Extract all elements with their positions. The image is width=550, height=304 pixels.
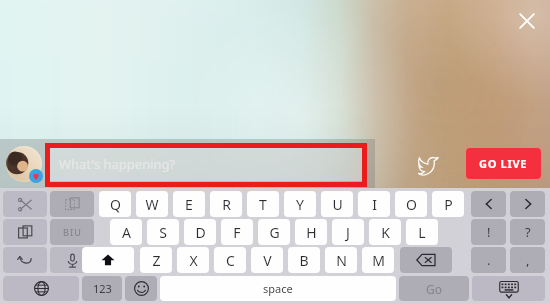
button[interactable]: . — [471, 247, 506, 273]
button[interactable]: Close — [510, 4, 544, 38]
button[interactable]: X — [177, 247, 209, 273]
button[interactable]: S — [147, 219, 179, 245]
button[interactable]: Y — [284, 191, 316, 217]
staticText: Z — [152, 251, 161, 270]
button[interactable]: D — [184, 219, 216, 245]
staticText: O — [406, 195, 417, 214]
staticText: B I U — [63, 226, 81, 238]
staticText: space — [263, 281, 293, 296]
button[interactable] — [471, 191, 506, 217]
staticText: S — [159, 223, 167, 242]
button[interactable]: E — [173, 191, 205, 217]
staticText: U — [332, 195, 343, 214]
staticText: N — [336, 251, 347, 270]
staticText: L — [418, 223, 426, 242]
button[interactable] — [50, 191, 94, 217]
staticText: I — [372, 195, 377, 214]
staticText: Y — [296, 195, 304, 214]
button[interactable]: ! — [471, 219, 506, 245]
staticText: E — [185, 195, 193, 214]
button[interactable]: Backspace — [400, 247, 452, 273]
button[interactable]: K — [369, 219, 401, 245]
staticText: B — [299, 251, 309, 270]
staticText: A — [122, 223, 131, 242]
staticText: GO LIVE — [479, 156, 528, 171]
button[interactable]: Z — [140, 247, 172, 273]
button[interactable]: F — [221, 219, 253, 245]
button[interactable]: H — [295, 219, 327, 245]
staticText: D — [195, 223, 206, 242]
button[interactable]: W — [136, 191, 168, 217]
button[interactable]: space — [160, 276, 396, 301]
button[interactable]: G — [258, 219, 290, 245]
button[interactable]: J — [332, 219, 364, 245]
staticText: ? — [525, 223, 531, 241]
button[interactable]: ? — [510, 219, 545, 245]
staticText: , — [526, 251, 530, 269]
button[interactable]: R — [210, 191, 242, 217]
staticText: T — [259, 195, 267, 214]
button[interactable] — [3, 219, 47, 245]
button[interactable]: O — [395, 191, 427, 217]
button[interactable]: T — [247, 191, 279, 217]
button[interactable]: N — [325, 247, 357, 273]
button[interactable]: M — [362, 247, 394, 273]
button[interactable]: Share on Twitter — [413, 149, 443, 179]
button[interactable] — [3, 191, 47, 217]
staticText: P — [444, 195, 453, 214]
button[interactable]: 123 — [82, 276, 122, 301]
staticText: . — [487, 251, 491, 269]
staticText: M — [372, 251, 385, 270]
button[interactable]: U — [321, 191, 353, 217]
button[interactable] — [510, 191, 545, 217]
button[interactable]: GO LIVE — [466, 148, 541, 179]
staticText: 123 — [93, 281, 112, 296]
button[interactable]: P — [432, 191, 464, 217]
staticText: F — [233, 223, 241, 242]
button[interactable]: What's happening? — [49, 146, 363, 181]
staticText: R — [222, 195, 231, 214]
button[interactable]: B — [288, 247, 320, 273]
staticText: C — [226, 251, 235, 270]
staticText: W — [145, 195, 159, 214]
button[interactable] — [50, 247, 94, 273]
button[interactable] — [3, 247, 47, 273]
button[interactable]: L — [406, 219, 438, 245]
staticText: X — [189, 251, 198, 270]
button[interactable]: Emoji — [125, 276, 157, 301]
staticText: G — [269, 223, 280, 242]
staticText: Q — [110, 195, 121, 214]
staticText: H — [306, 223, 317, 242]
button[interactable]: V — [251, 247, 283, 273]
button[interactable]: Hide keyboard — [472, 276, 545, 301]
button[interactable]: Profile — [6, 146, 42, 182]
staticText: ! — [487, 223, 491, 241]
staticText: Go — [426, 281, 442, 297]
button[interactable]: , — [510, 247, 545, 273]
button[interactable]: I — [358, 191, 390, 217]
staticText: V — [263, 251, 272, 270]
button[interactable]: Go — [399, 276, 469, 301]
button[interactable]: C — [214, 247, 246, 273]
button[interactable]: Shift — [82, 247, 134, 273]
staticText: J — [346, 223, 350, 242]
button[interactable]: Q — [99, 191, 131, 217]
staticText: K — [381, 223, 390, 242]
button[interactable]: A — [110, 219, 142, 245]
button[interactable]: Change language — [3, 276, 79, 301]
staticText: What's happening? — [59, 155, 176, 173]
button[interactable]: B I U — [50, 219, 94, 245]
